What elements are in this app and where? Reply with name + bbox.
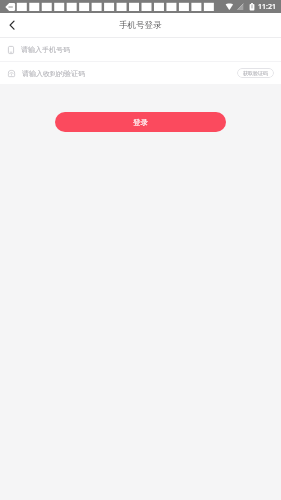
staticText: 请输入手机号码 <box>21 45 70 54</box>
staticText: 手机号登录 <box>119 20 162 31</box>
staticText: 11:21 <box>258 2 276 12</box>
staticText: 登录 <box>133 118 148 127</box>
staticText: 请输入收到的验证码 <box>22 69 85 78</box>
button[interactable]: 请输入手机号码 <box>0 38 281 61</box>
button[interactable]: 登录 <box>55 112 226 132</box>
button[interactable]: 获取验证码 <box>237 68 274 78</box>
button[interactable]: 请输入收到的验证码 <box>0 62 281 84</box>
button[interactable]: Back <box>0 13 24 37</box>
staticText: 获取验证码 <box>243 70 268 76</box>
